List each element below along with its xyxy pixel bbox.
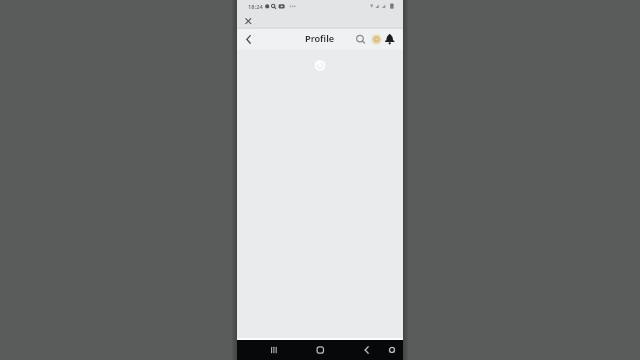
button[interactable]	[356, 340, 377, 360]
button[interactable]	[310, 340, 331, 360]
button[interactable]	[382, 340, 402, 360]
button[interactable]	[353, 32, 367, 46]
button[interactable]	[263, 340, 284, 360]
button[interactable]	[383, 32, 397, 46]
staticText: Profile	[305, 32, 335, 45]
staticText: 18:24	[248, 3, 263, 11]
button[interactable]	[240, 32, 256, 48]
button[interactable]	[370, 33, 383, 46]
button[interactable]	[242, 15, 255, 28]
